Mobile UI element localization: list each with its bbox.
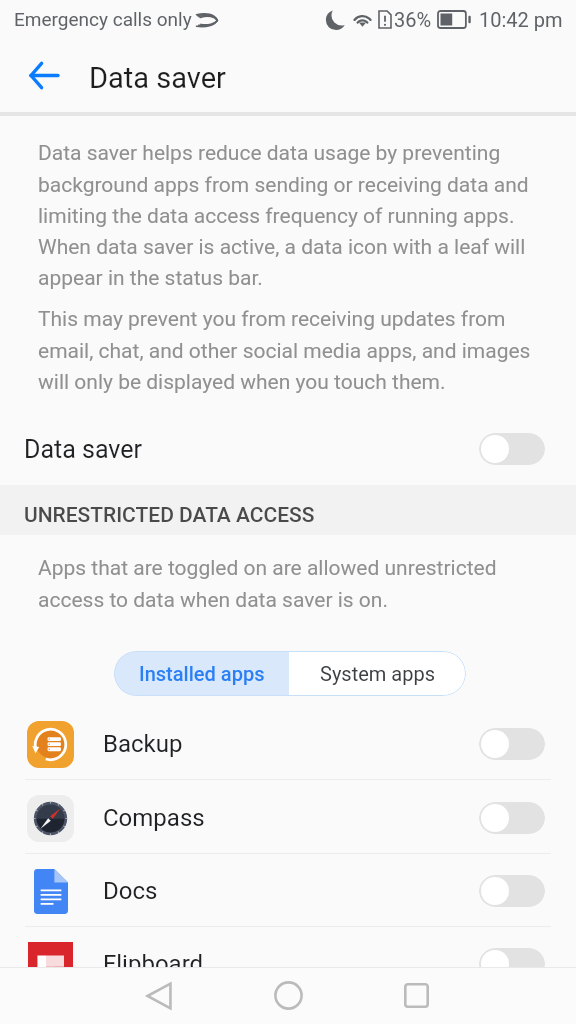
staticText: Installed apps (139, 662, 265, 685)
button[interactable]: Data saver (0, 412, 576, 486)
button[interactable]: Toggle (0, 781, 576, 854)
button[interactable]: Toggle (0, 927, 576, 1000)
staticText: Apps that are toggled on are allowed unr… (38, 556, 508, 612)
button[interactable]: Installed apps (114, 651, 289, 696)
button[interactable]: Home (260, 967, 316, 1024)
staticText: Compass (103, 804, 205, 832)
staticText: Data saver (89, 61, 226, 95)
staticText: 36% (394, 8, 432, 31)
button[interactable]: Toggle (479, 433, 545, 465)
staticText: Flipboard (103, 950, 204, 978)
button[interactable]: Toggle (479, 875, 545, 907)
staticText: Emergency calls only (14, 8, 192, 30)
staticText: UNRESTRICTED DATA ACCESS (24, 503, 315, 528)
button[interactable]: Navigate up (16, 41, 72, 109)
button[interactable]: Toggle (0, 854, 576, 927)
staticText: This may prevent you from receiving upda… (38, 307, 540, 394)
button[interactable]: Back (131, 967, 187, 1024)
button[interactable]: System apps (289, 651, 466, 696)
staticText: Backup (103, 730, 183, 758)
button[interactable]: Toggle (0, 707, 576, 780)
staticText: Data saver helps reduce data usage by pr… (38, 141, 540, 290)
staticText: 10:42 pm (479, 8, 563, 31)
staticText: Data saver (24, 435, 142, 464)
button[interactable]: Toggle (479, 802, 545, 834)
button[interactable]: Toggle (479, 728, 545, 760)
button[interactable]: Recent apps (388, 967, 444, 1024)
staticText: System apps (320, 662, 435, 685)
staticText: Docs (103, 877, 158, 905)
button[interactable]: Toggle (479, 948, 545, 980)
